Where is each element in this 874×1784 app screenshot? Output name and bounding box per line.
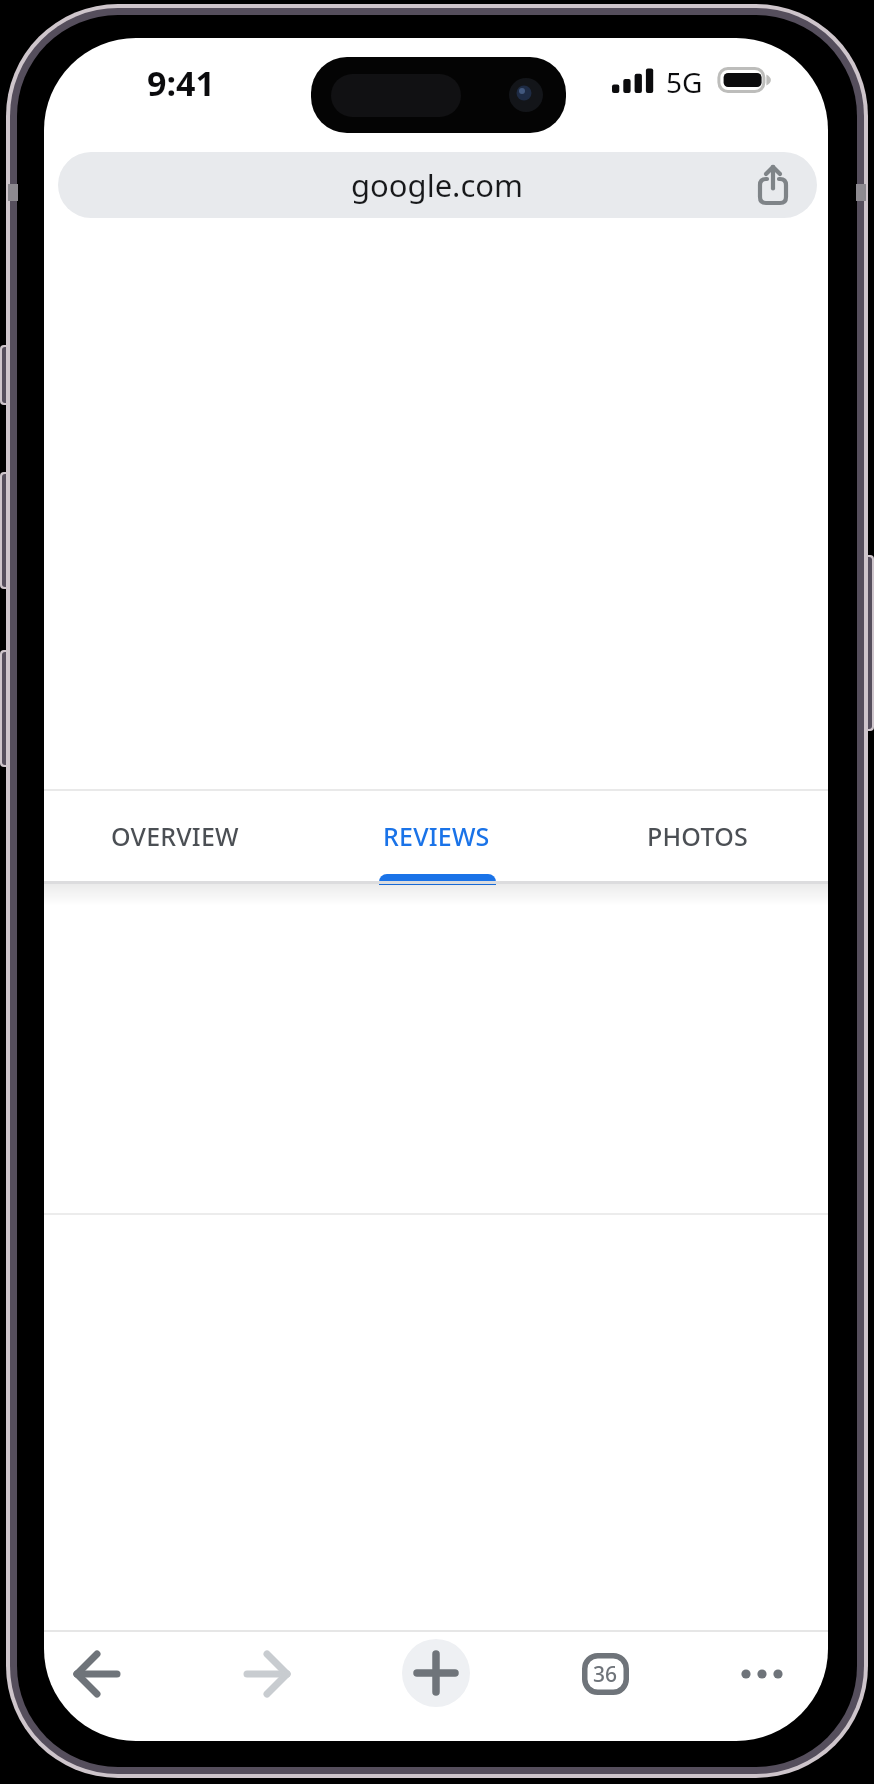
button[interactable]: REVIEWS: [306, 791, 567, 881]
button[interactable]: PHOTOS: [567, 791, 828, 881]
button[interactable]: google.com: [58, 152, 817, 218]
staticText: PHOTOS: [647, 819, 748, 853]
button[interactable]: [740, 1652, 784, 1696]
button[interactable]: [402, 1639, 470, 1707]
staticText: 36: [593, 1660, 618, 1689]
staticText: google.com: [351, 164, 524, 206]
button[interactable]: 36: [582, 1653, 629, 1695]
staticText: 5G: [666, 63, 703, 100]
button[interactable]: [245, 1652, 289, 1696]
staticText: OVERVIEW: [111, 819, 239, 853]
staticText: 9:41: [147, 60, 215, 101]
button[interactable]: [75, 1652, 119, 1696]
button[interactable]: OVERVIEW: [44, 791, 306, 881]
staticText: REVIEWS: [383, 819, 490, 853]
button[interactable]: [755, 164, 791, 206]
